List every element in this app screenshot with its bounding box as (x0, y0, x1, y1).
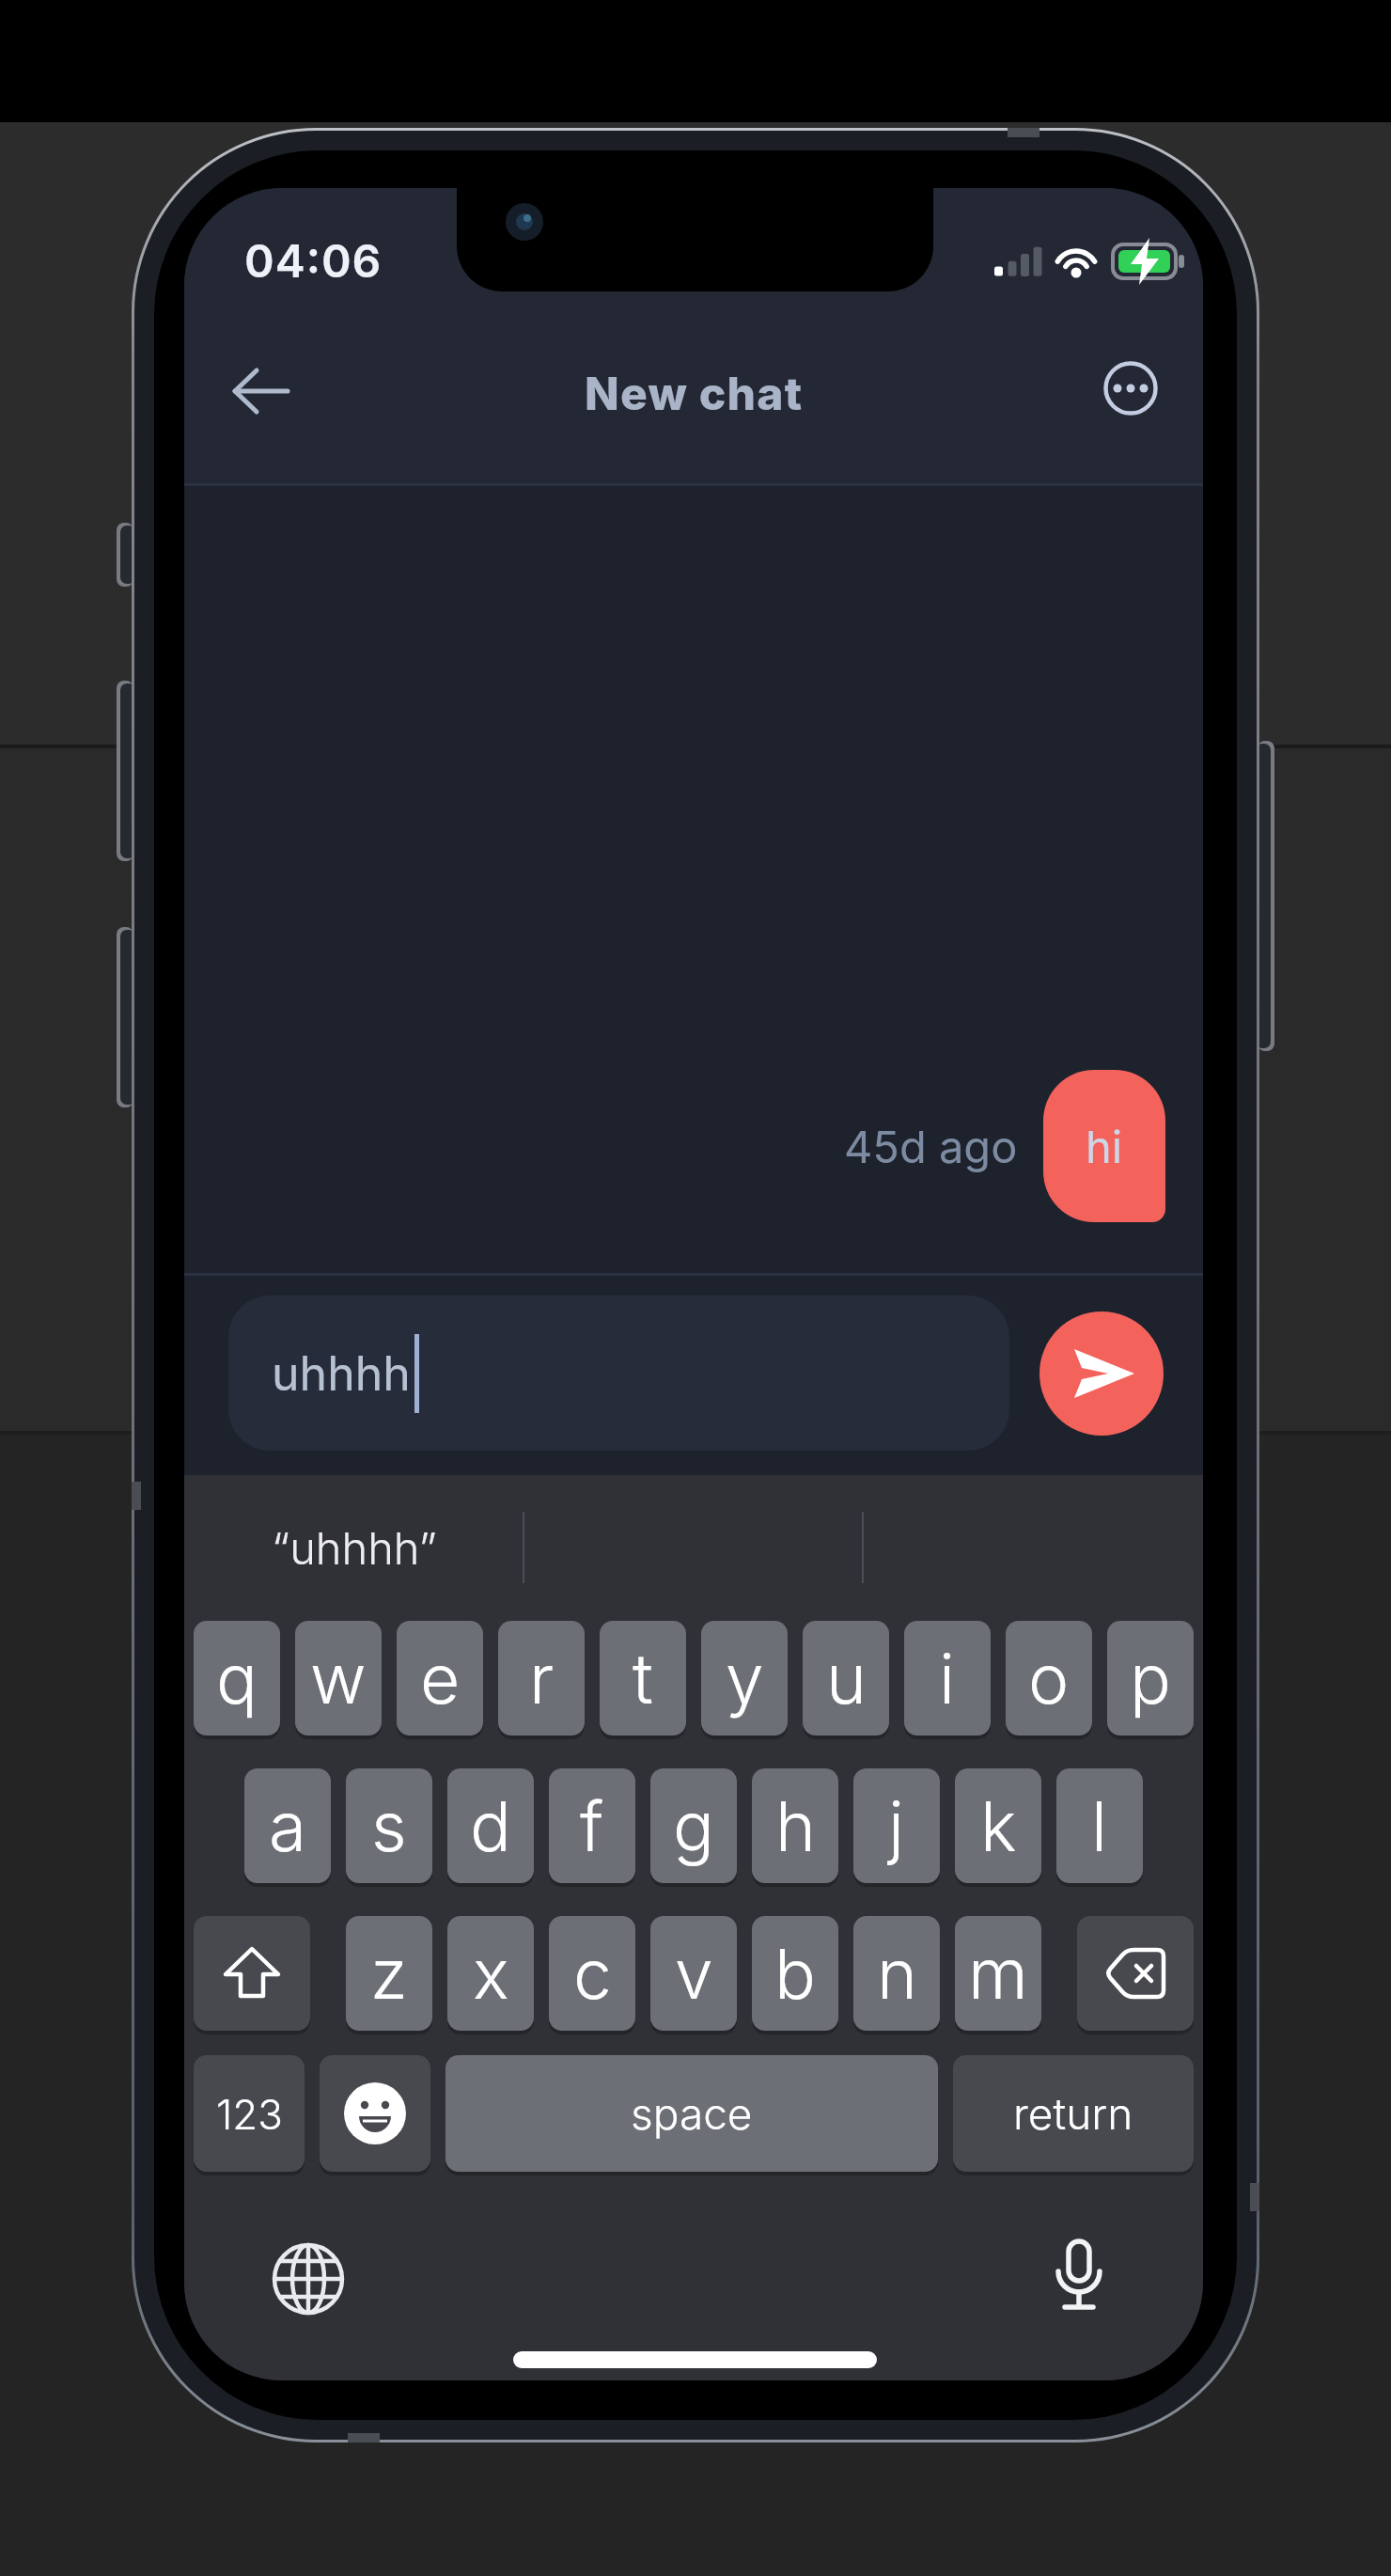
staticText: h (775, 1784, 816, 1867)
staticText: New chat (585, 366, 804, 420)
staticText: space (631, 2087, 753, 2140)
button[interactable]: g (650, 1768, 737, 1883)
staticText: v (675, 1932, 713, 2015)
staticText: k (980, 1784, 1017, 1867)
staticText: u (826, 1637, 867, 1720)
staticText: y (726, 1637, 764, 1720)
button[interactable]: k (955, 1768, 1041, 1883)
staticText: j (888, 1784, 905, 1867)
button[interactable]: y (701, 1621, 788, 1736)
button[interactable] (1039, 1312, 1164, 1436)
staticText: q (216, 1637, 258, 1720)
button[interactable] (320, 2055, 430, 2172)
staticText: x (473, 1932, 509, 2015)
button[interactable]: r (498, 1621, 585, 1736)
staticText: w (310, 1637, 367, 1720)
staticText: n (877, 1932, 917, 2015)
button[interactable]: u (803, 1621, 889, 1736)
button[interactable]: z (346, 1916, 432, 2031)
button[interactable]: q (194, 1621, 280, 1736)
button[interactable]: space (445, 2055, 938, 2172)
staticText: e (420, 1637, 461, 1720)
button[interactable]: c (549, 1916, 635, 2031)
button[interactable]: e (397, 1621, 483, 1736)
staticText: uhhhh (272, 1345, 411, 1402)
button[interactable]: j (853, 1768, 940, 1883)
button[interactable]: “uhhhh” (184, 1494, 524, 1602)
button[interactable]: hi (1043, 1070, 1165, 1222)
staticText: “uhhhh” (272, 1521, 437, 1575)
button[interactable]: return (953, 2055, 1194, 2172)
button[interactable] (1077, 1916, 1194, 2031)
staticText: f (580, 1784, 604, 1867)
button[interactable]: h (752, 1768, 838, 1883)
staticText: d (470, 1784, 511, 1867)
button[interactable]: b (752, 1916, 838, 2031)
staticText: b (774, 1932, 816, 2015)
staticText: c (573, 1932, 612, 2015)
staticText: return (1013, 2087, 1133, 2140)
staticText: a (269, 1784, 307, 1867)
button[interactable]: v (650, 1916, 737, 2031)
staticText: r (529, 1637, 555, 1720)
staticText: 45d ago (844, 1120, 1018, 1173)
button[interactable]: f (549, 1768, 635, 1883)
button[interactable]: m (955, 1916, 1041, 2031)
staticText: m (968, 1932, 1028, 2015)
button[interactable]: p (1107, 1621, 1194, 1736)
staticText: 123 (216, 2089, 283, 2139)
button[interactable]: 123 (194, 2055, 305, 2172)
button[interactable]: s (346, 1768, 432, 1883)
button[interactable]: o (1006, 1621, 1092, 1736)
button[interactable] (271, 2241, 346, 2317)
button[interactable]: x (447, 1916, 534, 2031)
staticText: z (370, 1932, 408, 2015)
staticText: p (1130, 1637, 1171, 1720)
staticText: hi (1086, 1120, 1123, 1173)
staticText: s (371, 1784, 407, 1867)
button[interactable]: w (295, 1621, 382, 1736)
staticText: l (1091, 1784, 1108, 1867)
button[interactable]: a (244, 1768, 331, 1883)
staticText: 04:06 (244, 233, 383, 288)
button[interactable]: l (1056, 1768, 1143, 1883)
button[interactable] (226, 362, 297, 420)
button[interactable] (1041, 2239, 1117, 2322)
staticText: g (673, 1784, 714, 1867)
staticText: i (939, 1637, 956, 1720)
button[interactable]: i (904, 1621, 991, 1736)
button[interactable] (194, 1916, 310, 2031)
button[interactable]: uhhhh (228, 1296, 1009, 1451)
button[interactable]: d (447, 1768, 534, 1883)
button[interactable] (1100, 357, 1162, 419)
button[interactable]: n (853, 1916, 940, 2031)
staticText: o (1028, 1637, 1070, 1720)
button[interactable]: t (600, 1621, 686, 1736)
staticText: t (633, 1637, 653, 1720)
